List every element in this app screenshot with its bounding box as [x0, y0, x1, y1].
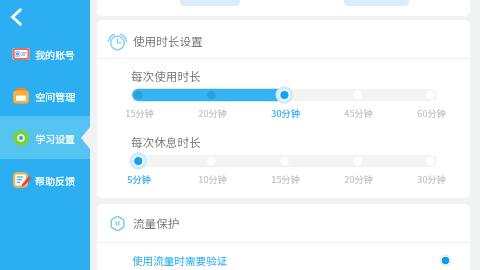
button[interactable]: 我的账号	[0, 44, 90, 64]
staticText: 使用时长设置	[133, 33, 203, 50]
staticText: 我的账号	[35, 47, 75, 61]
staticText: 每次使用时长	[131, 68, 201, 85]
staticText: 5分钟	[127, 172, 151, 185]
staticText: 20分钟	[344, 172, 373, 185]
staticText: 20分钟	[198, 106, 227, 119]
button[interactable]: 流量保护	[97, 204, 470, 243]
staticText: 30分钟	[417, 172, 446, 185]
button[interactable]: 空间管理	[0, 86, 90, 106]
button[interactable]: 使用时长设置	[97, 20, 470, 62]
button[interactable]: 学习设置	[0, 128, 90, 148]
staticText: 帮助反馈	[35, 173, 75, 187]
staticText: 60分钟	[417, 106, 446, 119]
staticText: 流量保护	[133, 215, 180, 232]
staticText: 45分钟	[344, 106, 373, 119]
button[interactable]: 帮助反馈	[0, 170, 90, 190]
button[interactable]: 使用流量时需要验证	[97, 243, 470, 270]
button[interactable]: Back	[0, 0, 90, 34]
staticText: 每次休息时长	[131, 134, 201, 151]
staticText: 15分钟	[125, 106, 154, 119]
staticText: 10分钟	[198, 172, 227, 185]
staticText: 学习设置	[35, 131, 75, 145]
staticText: 15分钟	[271, 172, 300, 185]
staticText: 空间管理	[35, 89, 75, 103]
staticText: 30分钟	[271, 106, 300, 119]
staticText: 使用流量时需要验证	[132, 253, 228, 268]
